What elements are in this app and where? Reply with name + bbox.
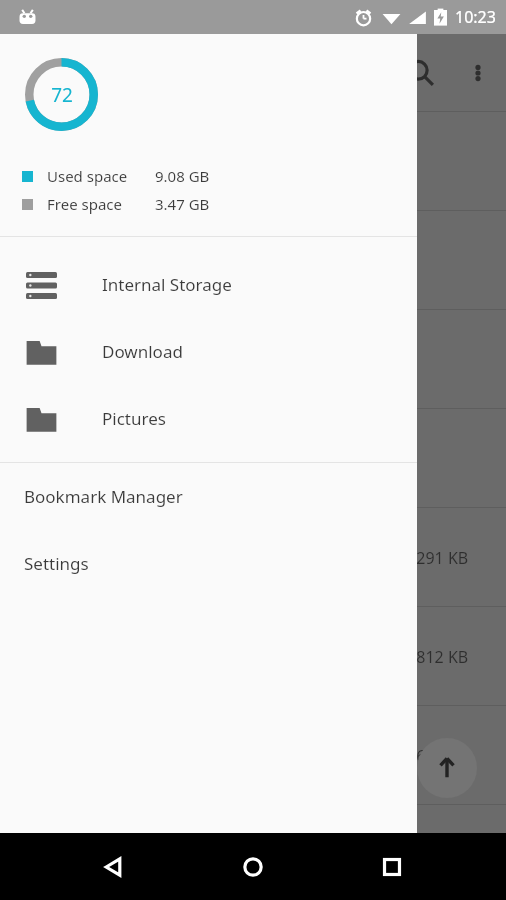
button[interactable]: Home <box>236 850 270 884</box>
staticText: ,687 KB <box>412 745 469 767</box>
staticText: Internal Storage <box>102 273 232 296</box>
staticText: Download <box>102 340 183 363</box>
button[interactable]: Bookmark Manager <box>0 463 417 530</box>
button[interactable]: Back <box>96 850 130 884</box>
staticText: Used space <box>47 166 128 186</box>
staticText: 3.47 GB <box>155 194 210 214</box>
staticText: Settings <box>24 552 89 575</box>
button[interactable]: Internal Storage <box>0 251 417 318</box>
staticText: ,812 KB <box>412 646 469 668</box>
staticText: ,291 KB <box>412 547 469 569</box>
staticText: Pictures <box>102 407 166 430</box>
button[interactable]: Pictures <box>0 385 417 452</box>
staticText: 72 <box>51 82 73 108</box>
button[interactable]: ,291 KB <box>0 508 506 607</box>
button[interactable]: Recents <box>375 850 409 884</box>
button[interactable]: Scroll to top <box>417 738 477 798</box>
button[interactable]: Download <box>0 318 417 385</box>
button[interactable]: ,812 KB <box>0 607 506 706</box>
button[interactable]: More options <box>458 53 498 93</box>
button[interactable] <box>0 211 506 310</box>
staticText: Bookmark Manager <box>24 485 183 508</box>
staticText: 9.08 GB <box>155 166 210 186</box>
button[interactable]: ,687 KB <box>0 706 506 805</box>
button[interactable] <box>0 409 506 508</box>
button[interactable] <box>0 310 506 409</box>
button[interactable]: Settings <box>0 530 417 597</box>
staticText: Free space <box>47 194 122 214</box>
button[interactable]: Search <box>404 56 438 90</box>
staticText: 10:23 <box>455 6 496 28</box>
button[interactable] <box>0 112 506 211</box>
